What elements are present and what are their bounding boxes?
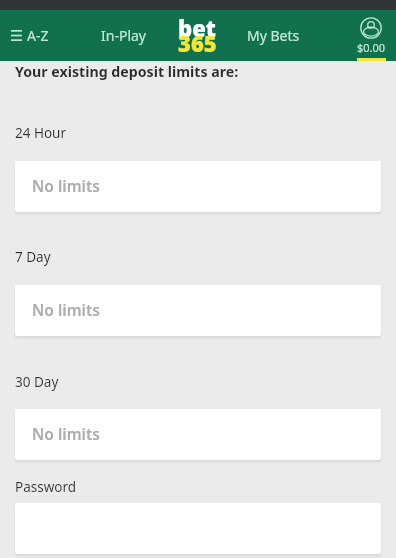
staticText: My Bets bbox=[247, 26, 300, 45]
other: My Account bbox=[360, 17, 382, 39]
button[interactable]: My Bets bbox=[243, 10, 303, 61]
staticText: Password bbox=[15, 478, 77, 496]
staticText: Your existing deposit limits are: bbox=[15, 62, 239, 81]
button[interactable]: My Account bbox=[350, 10, 392, 61]
button[interactable]: No limits bbox=[15, 285, 381, 336]
staticText: bet bbox=[178, 13, 216, 43]
button[interactable]: No limits bbox=[15, 161, 381, 212]
staticText: 365 bbox=[178, 28, 217, 58]
staticText: 24 Hour bbox=[15, 124, 67, 142]
button[interactable]: No limits bbox=[15, 409, 381, 460]
staticText: 7 Day bbox=[15, 248, 51, 266]
staticText: In-Play bbox=[101, 26, 146, 45]
staticText: 30 Day bbox=[15, 373, 59, 391]
button[interactable]: In-Play bbox=[97, 10, 149, 61]
button[interactable]: A-Z bbox=[5, 10, 59, 61]
staticText: No limits bbox=[32, 299, 100, 320]
staticText: A-Z bbox=[27, 26, 49, 45]
staticText: $0.00 bbox=[357, 40, 386, 55]
staticText: No limits bbox=[32, 175, 100, 196]
button[interactable]: bet365 home bbox=[178, 10, 220, 61]
staticText: No limits bbox=[32, 423, 100, 444]
